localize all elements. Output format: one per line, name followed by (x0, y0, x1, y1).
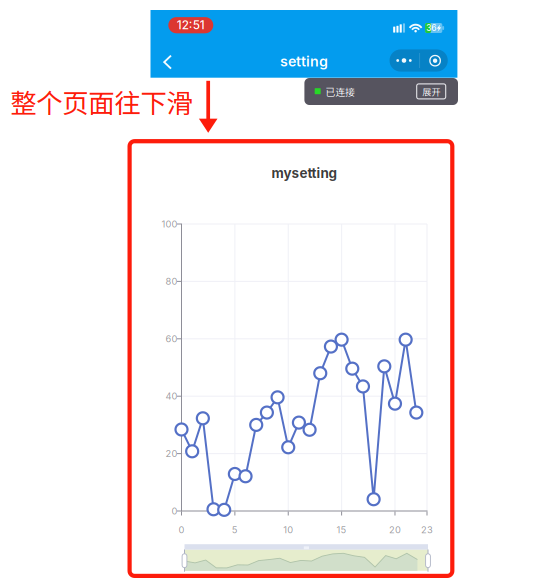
button[interactable]: Back (157, 49, 178, 76)
staticText: setting (280, 53, 328, 70)
staticText: 20 (389, 524, 401, 535)
staticText: 20 (165, 448, 177, 459)
staticText: 40 (165, 391, 177, 402)
staticText: 5 (232, 524, 238, 535)
staticText: 0 (178, 524, 184, 535)
staticText: 15 (337, 524, 347, 535)
staticText: 整个页面往下滑 (10, 82, 192, 120)
staticText: 36 (426, 23, 436, 33)
staticText: 80 (165, 276, 177, 287)
staticText: 60 (165, 333, 177, 344)
staticText: 0 (171, 505, 177, 517)
staticText: 已连接 (325, 84, 355, 99)
staticText: mysetting (272, 165, 338, 181)
staticText: 展开 (422, 85, 440, 98)
staticText: 10 (283, 524, 293, 535)
button[interactable]: 展开 (417, 84, 446, 99)
staticText: 12:51 (177, 18, 205, 32)
button[interactable]: More (389, 49, 448, 72)
staticText: 23 (421, 524, 433, 535)
staticText: 100 (161, 218, 177, 230)
